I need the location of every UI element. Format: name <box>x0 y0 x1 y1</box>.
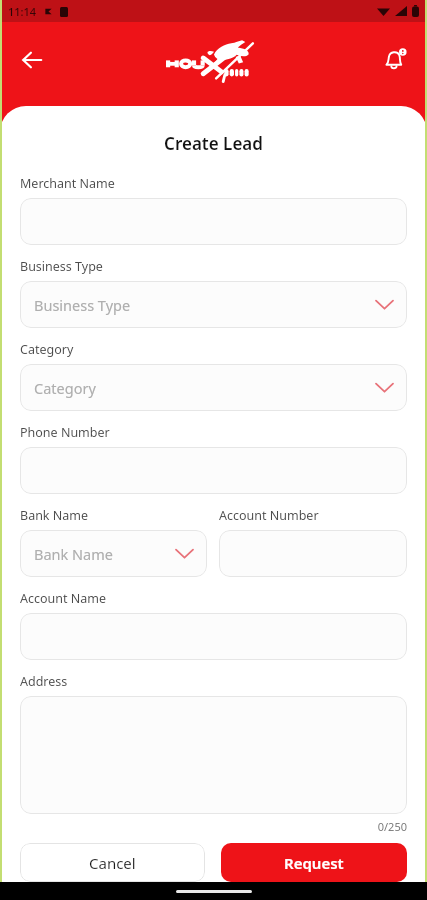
staticText: Account Number <box>219 507 319 524</box>
staticText: Cancel <box>89 853 136 873</box>
staticText: Account Name <box>20 590 107 607</box>
staticText: 11:14 <box>8 4 37 19</box>
button[interactable]: Request <box>221 843 407 882</box>
button[interactable]: Notifications <box>373 38 417 82</box>
staticText: Create Lead <box>20 132 407 155</box>
staticText: Request <box>284 853 344 873</box>
staticText: Bank Name <box>34 544 113 564</box>
staticText: Business Type <box>20 258 103 275</box>
staticText: Bank Name <box>20 507 89 524</box>
button[interactable]: Category <box>20 364 407 411</box>
button[interactable] <box>219 530 407 577</box>
staticText: Merchant Name <box>20 175 115 192</box>
button[interactable] <box>20 696 407 814</box>
button[interactable]: Business Type <box>20 281 407 328</box>
staticText: Business Type <box>34 295 131 315</box>
button[interactable]: Cancel <box>20 843 205 882</box>
button[interactable]: Back <box>10 38 54 82</box>
button[interactable]: Bank Name <box>20 530 207 577</box>
staticText: Category <box>20 341 74 358</box>
staticText: Address <box>20 673 68 690</box>
staticText: Phone Number <box>20 424 110 441</box>
button[interactable] <box>20 613 407 660</box>
staticText: Category <box>34 378 96 398</box>
button[interactable] <box>20 447 407 494</box>
staticText: 0/250 <box>20 819 407 834</box>
button[interactable] <box>20 198 407 245</box>
